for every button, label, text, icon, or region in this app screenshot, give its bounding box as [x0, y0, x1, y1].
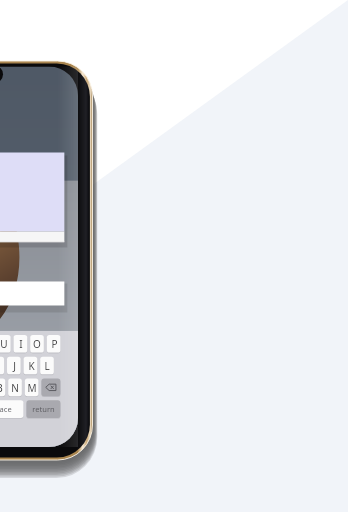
staticText: space: [0, 404, 12, 414]
staticText: I: [19, 337, 23, 351]
button[interactable]: K: [24, 357, 38, 375]
button[interactable]: I: [14, 335, 28, 353]
button[interactable]: space: [0, 400, 23, 418]
button[interactable]: P: [47, 335, 61, 353]
staticText: U: [0, 337, 8, 351]
button[interactable]: H: [0, 357, 4, 375]
staticText: J: [13, 359, 16, 373]
staticText: B: [0, 381, 3, 395]
staticText: O: [33, 337, 41, 351]
button[interactable]: O: [30, 335, 44, 353]
button[interactable]: M: [25, 379, 39, 397]
button[interactable]: return: [26, 400, 60, 418]
button[interactable]: U: [0, 335, 11, 353]
staticText: K: [28, 359, 35, 373]
button[interactable]: N: [8, 379, 22, 397]
button[interactable]: Backspace: [41, 379, 60, 397]
button[interactable]: B: [0, 379, 6, 397]
staticText: N: [11, 381, 19, 395]
button[interactable]: J: [7, 357, 21, 375]
staticText: return: [32, 404, 55, 414]
staticText: L: [44, 359, 50, 373]
staticText: M: [27, 381, 37, 395]
button[interactable]: L: [40, 357, 54, 375]
staticText: P: [51, 337, 58, 351]
